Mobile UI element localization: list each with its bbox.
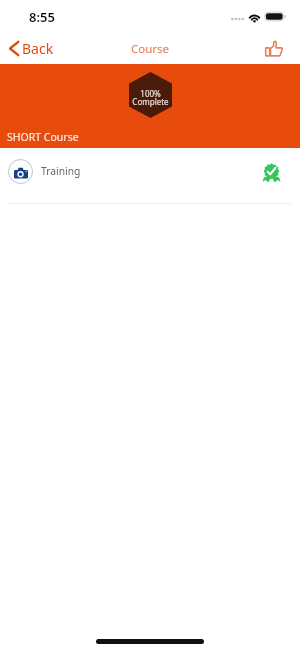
staticText: Complete (132, 96, 169, 107)
staticText: Training (41, 164, 81, 178)
staticText: 100% (140, 88, 161, 99)
staticText: 8:55 (29, 8, 55, 26)
button[interactable]: Back (0, 35, 62, 62)
staticText: Course (131, 41, 170, 57)
button[interactable]: Like (257, 36, 300, 62)
staticText: SHORT Course (7, 130, 79, 144)
button[interactable]: Training (0, 148, 300, 203)
staticText: Back (22, 39, 54, 58)
